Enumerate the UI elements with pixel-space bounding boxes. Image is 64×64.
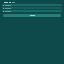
button[interactable] <box>2 7 62 9</box>
button[interactable] <box>2 4 62 6</box>
button[interactable] <box>2 10 62 12</box>
button[interactable]: Primary action <box>3 14 61 17</box>
button[interactable] <box>4 1 58 3</box>
